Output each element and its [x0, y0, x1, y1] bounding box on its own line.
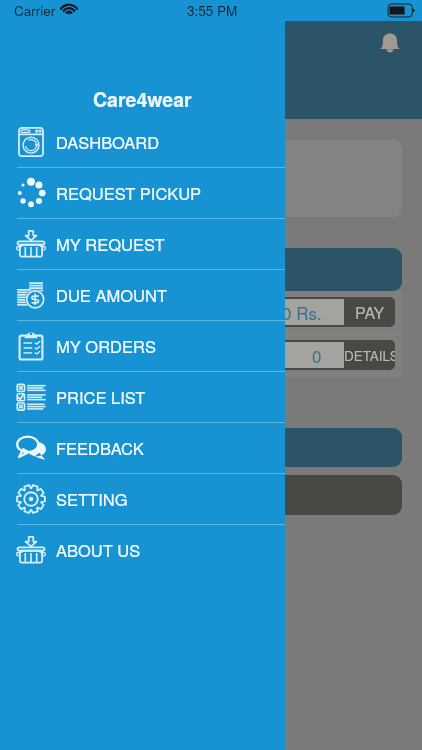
staticText: PRICE LIST — [56, 385, 146, 409]
staticText: DASHBOARD — [56, 130, 160, 154]
staticText: SETTING — [56, 487, 128, 511]
staticText: MY REQUEST — [56, 232, 165, 256]
button[interactable]: PRICE LIST — [0, 372, 285, 423]
button[interactable]: DUE AMOUNT — [0, 270, 285, 321]
staticText: 0 — [312, 343, 322, 367]
staticText: ABOUT US — [56, 538, 141, 562]
button[interactable]: 0 Rs. — [23, 297, 395, 327]
button[interactable]: ABOUT US — [0, 525, 285, 576]
staticText: REQUEST PICKUP — [56, 181, 202, 205]
button[interactable]: FEEDBACK — [0, 423, 285, 474]
button[interactable]: MY REQUEST — [0, 219, 285, 270]
button[interactable]: 0 — [23, 340, 395, 370]
staticText: FEEDBACK — [56, 436, 144, 460]
button[interactable]: DASHBOARD — [0, 117, 285, 168]
staticText: DETAILS — [344, 346, 395, 365]
button[interactable]: SETTING — [0, 474, 285, 525]
staticText: 0 Rs. — [282, 300, 322, 324]
staticText: Care4wear — [93, 85, 192, 108]
button[interactable]: Notifications — [372, 24, 408, 60]
staticText: 3:55 PM — [187, 1, 238, 20]
staticText: MY ORDERS — [56, 334, 156, 358]
staticText: Carrier — [14, 1, 56, 20]
staticText: PAY — [355, 301, 385, 324]
staticText: DUE AMOUNT — [56, 283, 167, 307]
button[interactable]: MY ORDERS — [0, 321, 285, 372]
button[interactable]: REQUEST PICKUP — [0, 168, 285, 219]
